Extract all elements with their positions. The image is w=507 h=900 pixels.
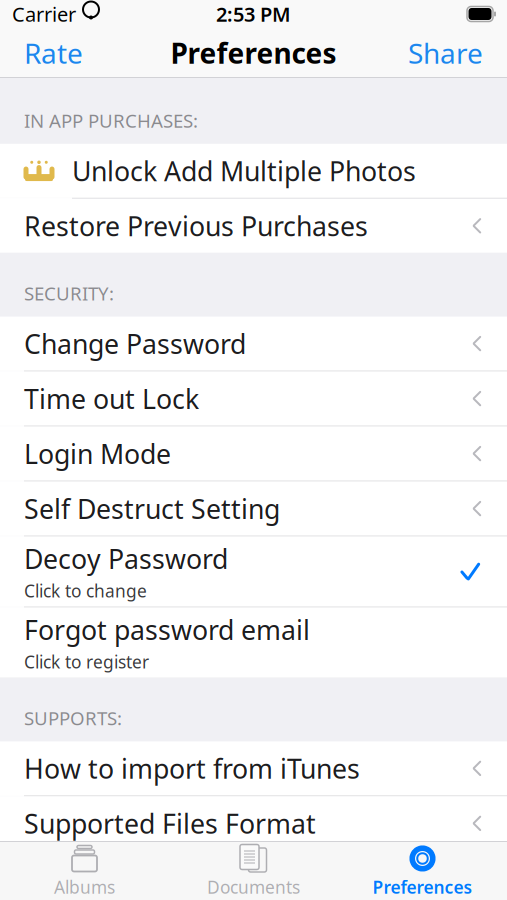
button[interactable]: Self Destruct Setting [0,482,507,536]
staticText: Click to register [24,650,149,673]
staticText: Preferences [372,875,472,898]
button[interactable]: Share [402,28,489,78]
staticText: Click to change [24,579,147,602]
button[interactable]: Rate [18,28,89,78]
staticText: SECURITY: [24,281,114,306]
button[interactable]: Preferences [338,842,507,900]
staticText: Supported Files Format [24,806,316,841]
button[interactable]: Change Password [0,317,507,371]
button[interactable]: Decoy Password [0,537,507,607]
staticText: How to import from iTunes [24,751,360,786]
staticText: Decoy Password [24,541,228,576]
staticText: IN APP PURCHASES: [24,108,198,133]
button[interactable]: Supported Files Format [0,796,507,850]
staticText: Albums [54,875,115,898]
staticText: Login Mode [24,436,171,471]
staticText: Restore Previous Purchases [24,208,368,243]
button[interactable]: Documents [169,842,338,900]
button[interactable]: Contact Support [0,851,507,900]
button[interactable]: Unlock Add Multiple Photos [0,144,507,198]
button[interactable]: Restore Previous Purchases [0,199,507,253]
staticText: Contact Support [24,861,228,896]
staticText: Rate [24,34,83,72]
button[interactable]: Albums [0,842,169,900]
staticText: Documents [207,875,300,898]
staticText: Unlock Add Multiple Photos [72,153,416,188]
staticText: 2:53 PM [216,1,291,27]
staticText: Self Destruct Setting [24,491,280,526]
staticText: SUPPORTS: [24,706,122,730]
staticText: Time out Lock [24,381,199,416]
staticText: Carrier [12,1,76,27]
staticText: Preferences [170,34,336,72]
button[interactable]: Forgot password email [0,608,507,678]
button[interactable]: How to import from iTunes [0,741,507,795]
button[interactable]: Time out Lock [0,372,507,426]
staticText: Share [408,34,483,72]
staticText: Forgot password email [24,612,310,647]
staticText: Change Password [24,326,246,361]
button[interactable]: Login Mode [0,427,507,481]
